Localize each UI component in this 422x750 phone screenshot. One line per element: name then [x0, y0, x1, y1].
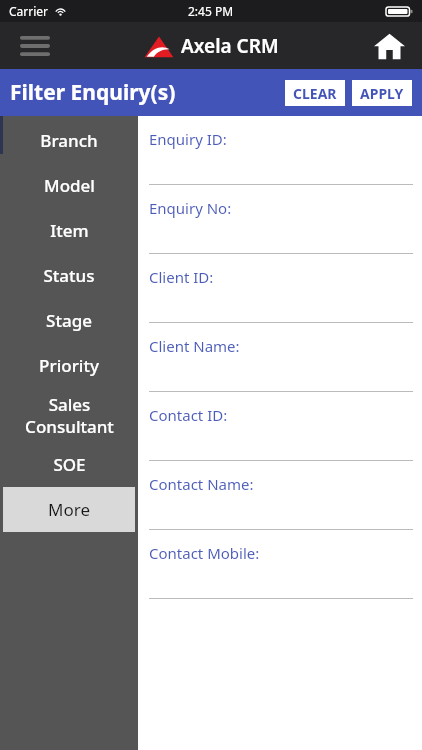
- staticText: SOE: [53, 453, 86, 476]
- staticText: Item: [50, 219, 89, 242]
- staticText: APPLY: [360, 84, 404, 103]
- button[interactable]: Menu: [12, 23, 58, 69]
- staticText: More: [48, 498, 90, 521]
- staticText: CLEAR: [293, 84, 337, 103]
- button[interactable]: Home: [366, 23, 412, 69]
- button[interactable]: Branch: [3, 118, 135, 163]
- staticText: Carrier: [9, 3, 49, 19]
- button[interactable]: Sales Consultant: [3, 388, 135, 442]
- button[interactable]: APPLY: [352, 80, 412, 106]
- button[interactable]: Stage: [3, 298, 135, 343]
- staticText: Client Name:: [149, 336, 240, 356]
- staticText: Contact Name:: [149, 474, 254, 494]
- button[interactable]: Contact Mobile:: [138, 530, 422, 599]
- button[interactable]: Priority: [3, 343, 135, 388]
- staticText: Priority: [39, 354, 99, 377]
- button[interactable]: Model: [3, 163, 135, 208]
- button[interactable]: Item: [3, 208, 135, 253]
- button[interactable]: Enquiry No:: [138, 185, 422, 254]
- staticText: Branch: [40, 129, 98, 152]
- staticText: Axela CRM: [181, 33, 279, 59]
- staticText: 2:45 PM: [188, 3, 234, 19]
- staticText: Enquiry ID:: [149, 129, 227, 149]
- staticText: Client ID:: [149, 267, 214, 287]
- staticText: Model: [44, 174, 95, 197]
- button[interactable]: Status: [3, 253, 135, 298]
- staticText: Sales Consultant: [25, 393, 114, 438]
- staticText: Enquiry No:: [149, 198, 232, 218]
- staticText: Contact ID:: [149, 405, 228, 425]
- staticText: Stage: [46, 309, 92, 332]
- button[interactable]: CLEAR: [285, 80, 345, 106]
- button[interactable]: SOE: [3, 442, 135, 487]
- staticText: Contact Mobile:: [149, 543, 260, 563]
- staticText: Status: [43, 264, 95, 287]
- staticText: Filter Enquiry(s): [10, 78, 176, 107]
- button[interactable]: Enquiry ID:: [138, 116, 422, 185]
- button[interactable]: Client ID:: [138, 254, 422, 323]
- button[interactable]: Contact Name:: [138, 461, 422, 530]
- button[interactable]: Client Name:: [138, 323, 422, 392]
- button[interactable]: More: [3, 487, 135, 532]
- button[interactable]: Contact ID:: [138, 392, 422, 461]
